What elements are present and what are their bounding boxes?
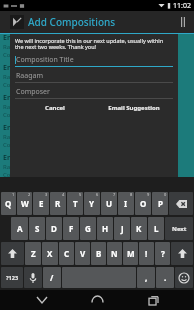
staticText: K <box>136 223 142 234</box>
staticText: M <box>127 248 135 259</box>
button[interactable]: X <box>42 242 58 265</box>
staticText: ?123 <box>6 274 19 281</box>
staticText: Entire Composition <box>3 213 70 223</box>
staticText: Composer <box>3 111 33 119</box>
staticText: 8 <box>130 192 133 197</box>
staticText: 7 <box>113 192 116 197</box>
button[interactable]: ?123 <box>1 267 23 288</box>
staticText: RAAGAM <box>2 21 29 29</box>
staticText: Z <box>31 248 36 259</box>
button[interactable]: T <box>67 192 83 215</box>
staticText: Raagam <box>3 73 27 81</box>
staticText: S <box>35 223 40 234</box>
button[interactable]: ! <box>139 242 154 265</box>
staticText: G <box>85 223 91 234</box>
button[interactable]: Y <box>84 192 100 215</box>
staticText: B <box>96 248 102 259</box>
button[interactable]: Cancel <box>15 104 94 112</box>
staticText: 0 <box>164 192 167 197</box>
staticText: L <box>154 223 159 234</box>
staticText: Next <box>172 225 187 233</box>
button[interactable]: I <box>118 192 134 215</box>
staticText: Raagam <box>3 103 27 111</box>
button[interactable]: B <box>91 242 106 265</box>
button[interactable]: U <box>101 192 117 215</box>
staticText: Entire Composition <box>3 93 70 103</box>
button[interactable]: H <box>97 217 113 240</box>
button[interactable]: A <box>11 217 28 240</box>
staticText: W <box>21 198 29 209</box>
staticText: Raagam <box>3 193 27 201</box>
staticText: 11:02 <box>173 1 191 11</box>
staticText: A <box>17 223 23 234</box>
staticText: . <box>164 272 167 283</box>
button[interactable]: Emoji <box>175 267 193 288</box>
staticText: P <box>158 198 163 209</box>
button[interactable]: Shift right <box>171 242 193 265</box>
staticText: E <box>39 198 44 209</box>
staticText: COMPOSER <box>158 21 192 29</box>
button[interactable]: More options <box>176 15 190 29</box>
button[interactable]: Shift <box>1 242 24 265</box>
button[interactable]: G <box>80 217 96 240</box>
button[interactable]: L <box>148 217 164 240</box>
staticText: 9 <box>147 192 150 197</box>
staticText: Entire Composition <box>3 153 70 163</box>
staticText: Composer <box>3 51 33 59</box>
button[interactable]: W <box>17 192 32 215</box>
button[interactable]: Next <box>165 217 193 240</box>
staticText: Q <box>5 198 12 209</box>
staticText: Raagam <box>16 71 43 81</box>
button[interactable]: D <box>46 217 62 240</box>
button[interactable]: ? <box>155 242 170 265</box>
button[interactable]: Q <box>1 192 16 215</box>
staticText: R <box>55 198 61 209</box>
button[interactable]: V <box>75 242 90 265</box>
staticText: I <box>124 198 128 209</box>
button[interactable]: O <box>135 192 151 215</box>
button[interactable]: S <box>29 217 45 240</box>
staticText: Entire Composition <box>3 63 70 73</box>
staticText: C <box>64 248 70 259</box>
staticText: Raagam <box>3 133 27 141</box>
staticText: Add Compositions <box>28 15 116 29</box>
staticText: Composer <box>3 141 33 149</box>
staticText: X <box>47 248 53 259</box>
staticText: , <box>145 272 148 283</box>
button[interactable]: , <box>137 267 155 288</box>
button[interactable]: Home <box>83 290 111 310</box>
staticText: J <box>121 223 124 234</box>
button[interactable]: Voice input <box>24 267 42 288</box>
button[interactable]: Composer <box>15 87 173 99</box>
staticText: H <box>102 223 109 234</box>
staticText: 3 <box>45 192 48 197</box>
button[interactable]: N <box>107 242 122 265</box>
button[interactable]: Composition Title <box>15 55 173 67</box>
staticText: D <box>51 223 57 234</box>
button[interactable]: M <box>123 242 138 265</box>
button[interactable]: R <box>50 192 66 215</box>
button[interactable]: Z <box>25 242 41 265</box>
button[interactable]: E <box>33 192 49 215</box>
staticText: Entire Composition <box>3 33 70 43</box>
staticText: T <box>73 198 78 209</box>
staticText: U <box>106 198 113 209</box>
staticText: 1 <box>12 192 15 197</box>
staticText: ! <box>145 248 148 259</box>
button[interactable]: Backspace <box>169 192 193 215</box>
staticText: Entire Composition <box>3 183 70 193</box>
button[interactable]: Email Suggestion <box>94 104 173 112</box>
button[interactable]: Raagam <box>15 71 173 83</box>
button[interactable]: J <box>114 217 130 240</box>
button[interactable]: P <box>152 192 168 215</box>
button[interactable]: . <box>156 267 174 288</box>
staticText: 5 <box>79 192 82 197</box>
button[interactable]: K <box>131 217 147 240</box>
button[interactable]: F <box>63 217 79 240</box>
staticText: Raagam <box>3 223 27 231</box>
button[interactable]: / <box>43 267 61 288</box>
button[interactable]: Back <box>28 290 56 310</box>
button[interactable]: C <box>59 242 74 265</box>
button[interactable]: Recents <box>139 290 167 310</box>
